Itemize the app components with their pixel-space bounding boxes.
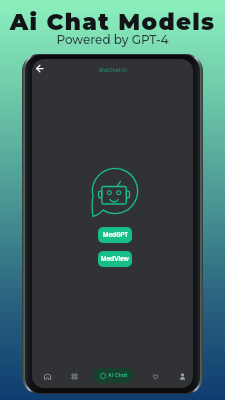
button[interactable]: Back [32,60,47,76]
staticText: Ai Chat [108,372,128,379]
button[interactable]: MedView [98,251,132,267]
button[interactable]: Explore [68,370,80,382]
button[interactable]: Favorites [149,370,161,382]
staticText: Powered by GPT-4 [0,32,225,47]
staticText: WebChat AI [32,67,193,73]
button[interactable]: Home [41,370,53,382]
button[interactable]: Ai Chat [93,368,134,383]
button[interactable]: Profile [176,370,188,382]
staticText: MedGPT [103,231,128,239]
staticText: MedView [101,255,129,263]
button[interactable]: MedGPT [98,227,132,243]
staticText: Ai Chat Models [0,8,225,36]
